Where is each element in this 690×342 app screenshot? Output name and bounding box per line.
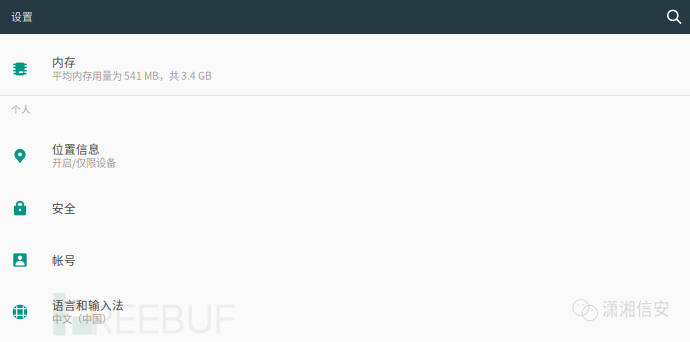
button[interactable]: Search bbox=[659, 2, 689, 32]
staticText: 内存 bbox=[52, 53, 76, 70]
button[interactable]: 安全 bbox=[0, 182, 690, 234]
staticText: 平均内存用量为 541 MB，共 3.4 GB bbox=[52, 68, 212, 83]
staticText: 开启/仅限设备 bbox=[52, 155, 116, 170]
staticText: 潇湘信安 bbox=[602, 296, 670, 320]
staticText: 位置信息 bbox=[52, 140, 100, 157]
staticText: 个人 bbox=[11, 102, 31, 116]
staticText: 设置 bbox=[11, 8, 33, 24]
staticText: REEBUF bbox=[88, 295, 235, 342]
staticText: 中文（中国） bbox=[52, 311, 112, 326]
button[interactable]: 语言和输入法 bbox=[0, 286, 690, 338]
button[interactable]: 帐号 bbox=[0, 234, 690, 286]
staticText: 安全 bbox=[52, 200, 76, 216]
staticText: 帐号 bbox=[52, 252, 76, 268]
button[interactable]: 内存 bbox=[0, 43, 690, 95]
staticText: 语言和输入法 bbox=[52, 296, 124, 313]
button[interactable]: 位置信息 bbox=[0, 130, 690, 182]
